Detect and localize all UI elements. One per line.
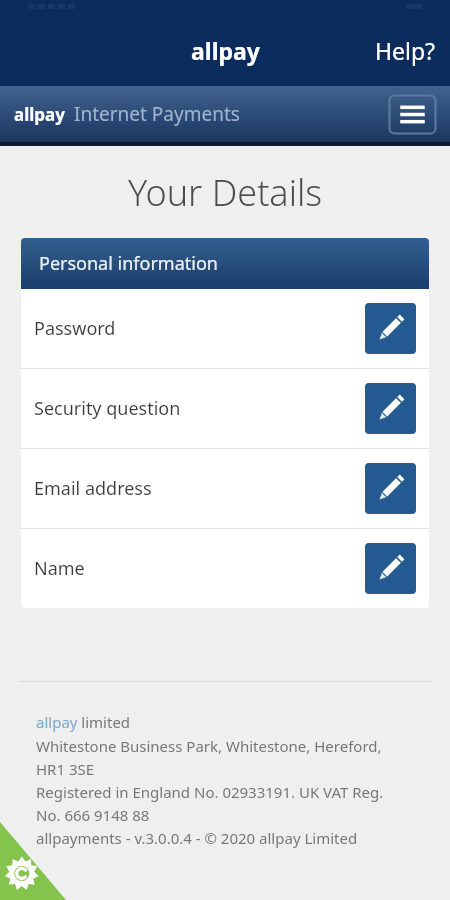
button[interactable]: Security question bbox=[21, 369, 429, 448]
staticText: Registered in England No. 02933191. UK V… bbox=[36, 782, 384, 802]
staticText: No. 666 9148 88 bbox=[36, 805, 150, 825]
staticText: allpayments - v.3.0.0.4 - © 2020 allpay … bbox=[36, 828, 358, 848]
button[interactable]: Password bbox=[21, 289, 429, 368]
button[interactable]: allpay bbox=[191, 35, 260, 66]
staticText: allpay bbox=[191, 35, 260, 66]
staticText: Security question bbox=[34, 396, 181, 421]
staticText: Whitestone Business Park, Whitestone, He… bbox=[36, 736, 382, 756]
button[interactable]: Edit bbox=[365, 463, 416, 514]
button[interactable]: Menu bbox=[388, 94, 437, 135]
staticText: allpay bbox=[14, 103, 65, 126]
button[interactable]: Edit bbox=[365, 543, 416, 594]
staticText: allpay limited bbox=[36, 712, 131, 732]
button[interactable]: Email address bbox=[21, 449, 429, 528]
staticText: Name bbox=[34, 556, 85, 581]
button[interactable]: Name bbox=[21, 529, 429, 608]
staticText: HR1 3SE bbox=[36, 759, 95, 779]
button[interactable]: Edit bbox=[365, 383, 416, 434]
staticText: Internet Payments bbox=[74, 101, 240, 127]
staticText: Help? bbox=[375, 35, 436, 66]
staticText: Email address bbox=[34, 476, 152, 501]
staticText: Your Details bbox=[128, 168, 323, 217]
staticText: Password bbox=[34, 316, 116, 341]
button[interactable]: Help? bbox=[361, 29, 450, 72]
button[interactable]: Personal information bbox=[21, 238, 429, 289]
staticText: Personal information bbox=[39, 251, 218, 276]
button[interactable]: Cookie settings bbox=[0, 822, 66, 900]
button[interactable]: Edit bbox=[365, 303, 416, 354]
